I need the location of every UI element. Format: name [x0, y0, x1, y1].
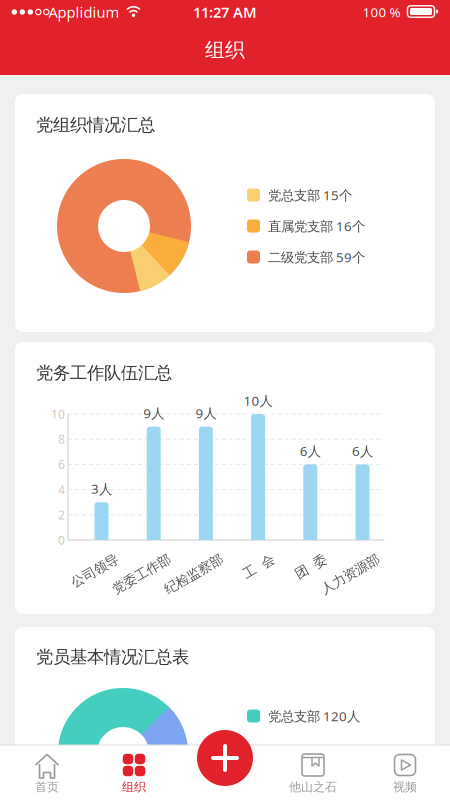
staticText: 100 % — [362, 3, 400, 21]
staticText: 党总支部 120人 — [268, 707, 360, 725]
button[interactable]: 首页 — [7, 745, 87, 800]
staticText: 二级党支部 59个 — [268, 248, 365, 266]
staticText: 首页 — [35, 780, 59, 794]
staticText: 党组织情况汇总 — [36, 114, 155, 136]
staticText: 团 委 — [294, 558, 328, 575]
staticText: 0 — [58, 532, 65, 548]
staticText: 10人 — [244, 392, 273, 409]
staticText: 9人 — [195, 404, 216, 422]
staticText: 4 — [58, 482, 65, 497]
staticText: 组织 — [205, 38, 245, 62]
staticText: 9人 — [143, 404, 164, 422]
staticText: 他山之石 — [289, 780, 337, 794]
staticText: 党委工作部 — [109, 566, 174, 582]
staticText: 10 — [51, 406, 65, 422]
staticText: 8 — [58, 431, 65, 447]
staticText: 3人 — [91, 480, 112, 497]
staticText: 2 — [58, 507, 65, 523]
staticText: 11:27 AM — [193, 2, 257, 22]
button[interactable] — [197, 730, 253, 786]
staticText: 视频 — [393, 780, 417, 794]
staticText: 公司领导 — [69, 563, 121, 579]
staticText: Applidium — [48, 2, 119, 22]
staticText: 党总支部 15个 — [268, 186, 352, 204]
staticText: 纪检监察部 — [161, 566, 226, 582]
staticText: 党务工作队伍汇总 — [36, 362, 172, 384]
button[interactable]: 组织 — [94, 745, 174, 800]
staticText: 6人 — [352, 442, 373, 460]
staticText: 工 会 — [241, 558, 275, 575]
button[interactable]: 视频 — [365, 745, 445, 800]
staticText: 组织 — [122, 780, 146, 794]
staticText: 6 — [58, 456, 65, 472]
staticText: 人力资源部 — [318, 566, 383, 582]
staticText: 党员基本情况汇总表 — [36, 646, 189, 668]
staticText: 直属党支部 16个 — [268, 217, 365, 235]
staticText: 6人 — [300, 442, 321, 460]
button[interactable]: 他山之石 — [273, 745, 353, 800]
